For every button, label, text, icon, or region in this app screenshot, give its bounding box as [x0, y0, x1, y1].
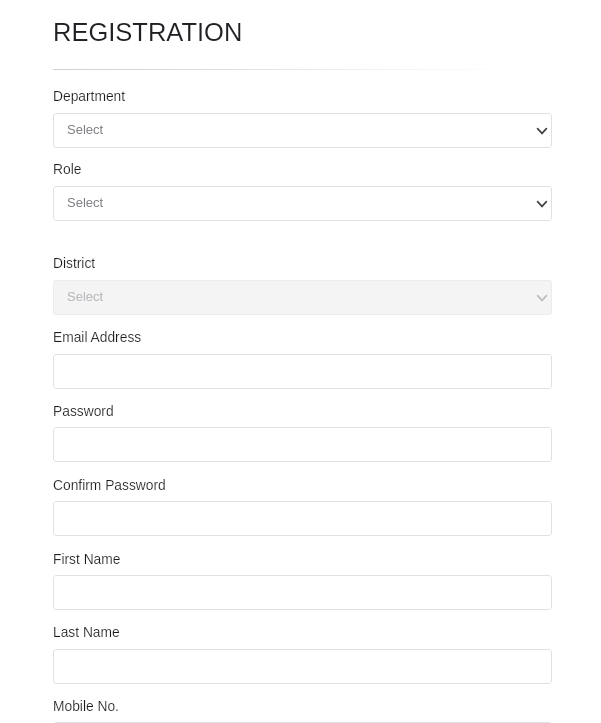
button[interactable]: Email Address text field [53, 354, 552, 389]
staticText: Last Name [53, 625, 120, 640]
button[interactable]: Last Name text field [53, 649, 552, 684]
button[interactable]: Password text field [53, 427, 552, 462]
staticText: Department [53, 89, 126, 104]
button[interactable]: Role dropdown [53, 186, 552, 221]
button[interactable]: Confirm Password text field [53, 501, 552, 536]
staticText: First Name [53, 552, 121, 567]
staticText: Password [53, 404, 114, 419]
button[interactable]: Department dropdown [53, 113, 552, 148]
staticText: Select [67, 122, 104, 137]
staticText: Role [53, 162, 82, 177]
staticText: REGISTRATION [53, 18, 243, 46]
staticText: District [53, 256, 96, 271]
staticText: Confirm Password [53, 478, 166, 493]
staticText: Select [67, 195, 104, 210]
button[interactable]: First Name text field [53, 575, 552, 610]
staticText: Select [67, 289, 104, 304]
button[interactable]: District dropdown [53, 280, 552, 315]
staticText: Email Address [53, 330, 142, 345]
staticText: Mobile No. [53, 699, 119, 714]
